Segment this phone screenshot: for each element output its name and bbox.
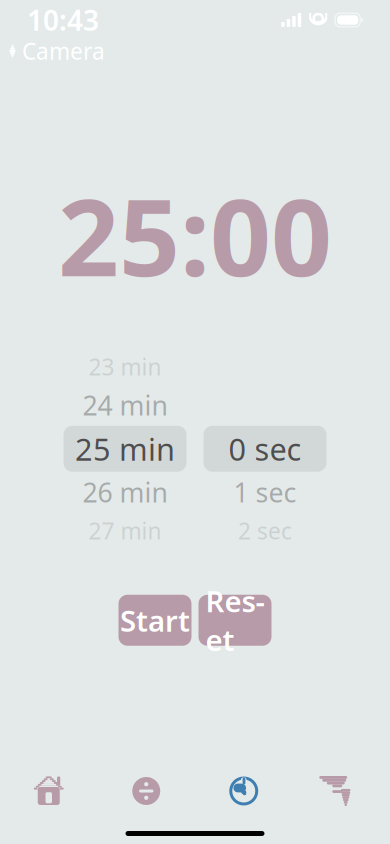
staticText: 27 min [88,516,161,546]
button[interactable]: Send [292,766,390,816]
staticText: 25:00 [58,164,332,306]
staticText: Start [120,601,190,640]
staticText: 26 min [82,474,167,510]
staticText: 10:43 [27,1,99,39]
button[interactable]: Home [0,766,97,816]
button[interactable]: Back to Camera [0,32,105,68]
button[interactable]: Reset [198,595,271,646]
button[interactable]: Calculator [97,766,195,816]
staticText: 23 min [88,352,161,382]
button[interactable]: Timer [195,766,292,816]
staticText: Reset [205,581,264,659]
staticText: Camera [22,36,105,66]
staticText: 24 min [82,387,167,423]
staticText: 0 sec [228,428,301,469]
staticText: 1 sec [233,474,296,510]
staticText: 25 min [75,428,175,469]
staticText: 2 sec [238,516,292,546]
button[interactable]: Start [118,595,191,646]
